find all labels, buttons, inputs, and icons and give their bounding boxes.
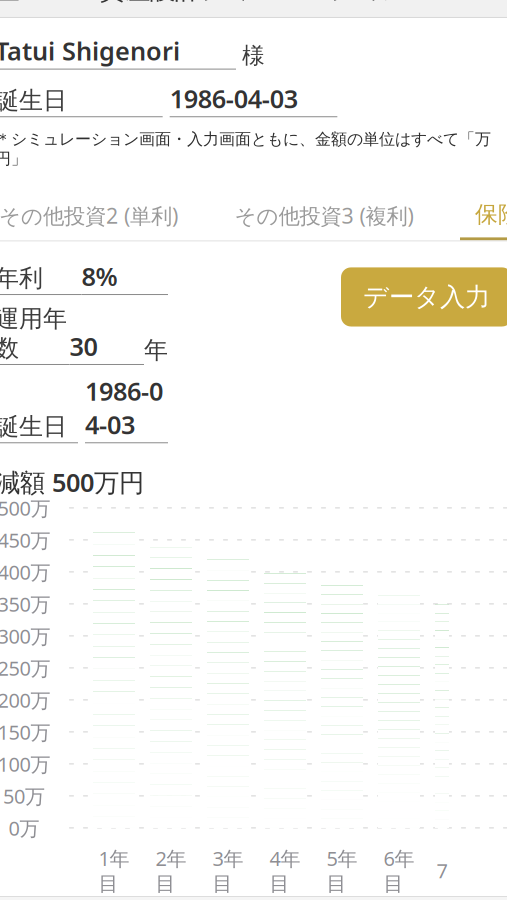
button[interactable]: その他投資2 (単利)	[0, 191, 188, 240]
staticText: 2年目	[155, 845, 186, 896]
staticText: 100万	[0, 751, 50, 777]
staticText: 400万	[0, 559, 50, 585]
staticText: 5年目	[326, 845, 357, 896]
staticText: 50万	[3, 783, 45, 809]
staticText: 0万	[8, 815, 39, 841]
staticText: 様	[242, 42, 265, 70]
button[interactable]: Menu	[0, 0, 33, 14]
staticText: 30	[69, 329, 97, 363]
staticText: 減額 500万円	[0, 465, 144, 499]
staticText: 年	[144, 335, 168, 365]
staticText: 500万	[0, 495, 50, 521]
staticText: その他投資3 (複利)	[234, 201, 413, 230]
staticText: 1986-04-03	[170, 82, 298, 115]
staticText: ＊シミュレーション画面・入力画面ともに、金額の単位はすべて「万円」	[0, 129, 491, 168]
staticText: 4年目	[269, 845, 300, 896]
staticText: 150万	[0, 719, 50, 745]
staticText: 6年目	[383, 845, 414, 896]
staticText: 450万	[0, 527, 50, 553]
staticText: その他投資2 (単利)	[0, 201, 178, 230]
button[interactable]: 保険	[460, 190, 507, 240]
button[interactable]: その他投資3 (複利)	[224, 191, 423, 240]
staticText: 300万	[0, 623, 50, 649]
staticText: 資産設計シミュレーション	[100, 0, 407, 5]
staticText: 250万	[0, 655, 50, 681]
staticText: Tatui Shigenori	[0, 34, 180, 68]
staticText: 7	[436, 857, 447, 884]
staticText: 誕生日	[0, 86, 67, 115]
staticText: 350万	[0, 591, 50, 617]
staticText: 保険	[475, 200, 507, 228]
staticText: 1年目	[98, 845, 129, 896]
staticText: 3年目	[212, 845, 243, 896]
button[interactable]: データ入力	[341, 267, 507, 326]
staticText: 200万	[0, 687, 50, 713]
staticText: 年利	[0, 264, 43, 293]
staticText: 誕生日	[0, 412, 67, 441]
staticText: データ入力	[363, 281, 490, 312]
staticText: 運用年数	[0, 304, 67, 363]
staticText: 1986-04-03	[85, 374, 163, 441]
staticText: 8%	[81, 259, 117, 293]
